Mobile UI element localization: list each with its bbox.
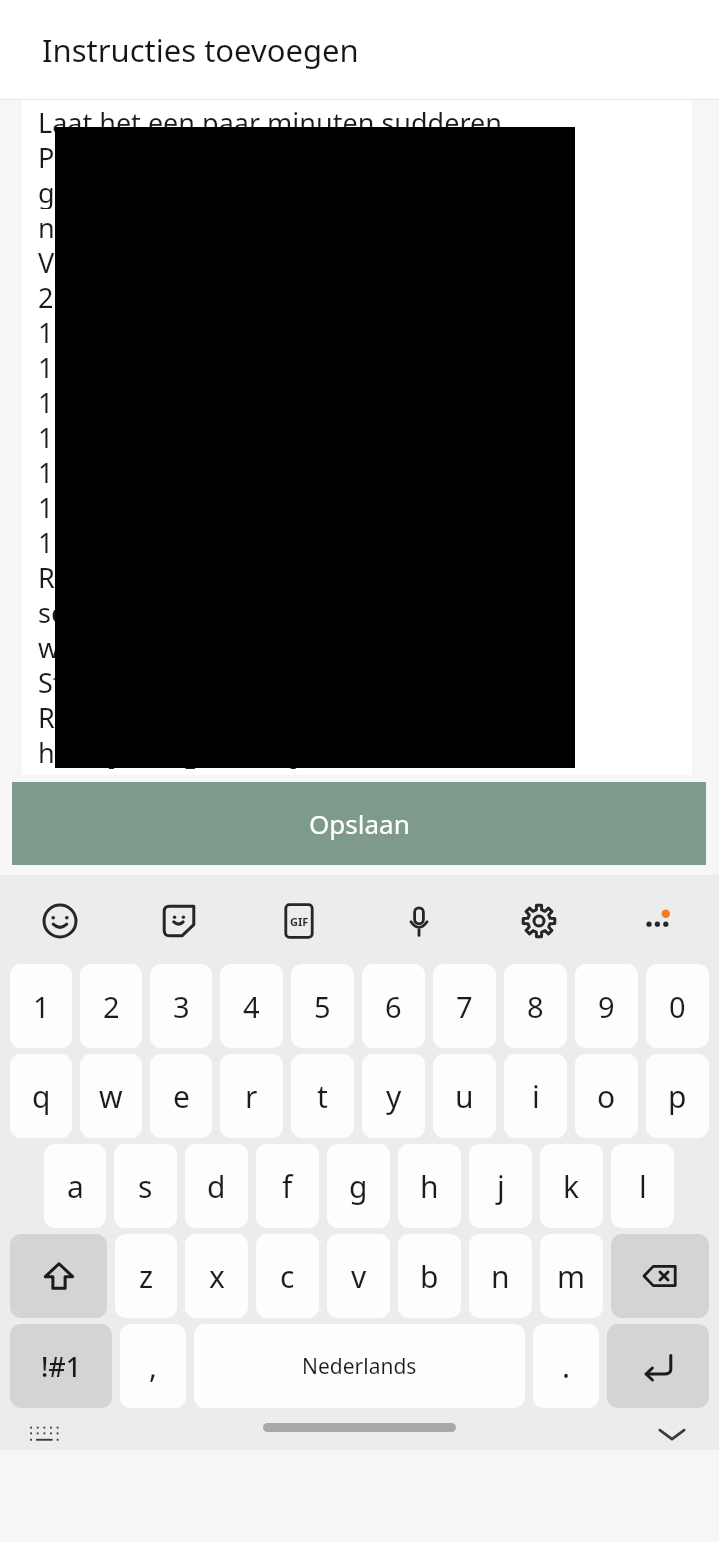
staticText: 1 bbox=[33, 987, 50, 1026]
button[interactable]: r bbox=[220, 1054, 283, 1138]
staticText: 2 bbox=[103, 987, 120, 1026]
staticText: j bbox=[497, 1166, 505, 1207]
button[interactable]: b bbox=[398, 1234, 461, 1318]
staticText: m bbox=[557, 1256, 586, 1297]
button[interactable]: k bbox=[540, 1144, 603, 1228]
staticText: wat geraspte kaas naar smaak voor bbox=[38, 629, 488, 664]
staticText: y bbox=[386, 1076, 402, 1117]
button[interactable]: t bbox=[291, 1054, 354, 1138]
button[interactable]: g bbox=[327, 1144, 390, 1228]
button[interactable]: e bbox=[150, 1054, 212, 1138]
button[interactable]: Backspace bbox=[611, 1234, 709, 1318]
button[interactable]: 3 bbox=[150, 964, 212, 1048]
staticText: f bbox=[282, 1166, 293, 1207]
staticText: h bbox=[420, 1166, 439, 1207]
button[interactable]: l bbox=[611, 1144, 674, 1228]
button[interactable]: Emoji bbox=[0, 882, 119, 960]
button[interactable]: Voice input bbox=[359, 882, 479, 960]
button[interactable]: d bbox=[185, 1144, 248, 1228]
staticText: heerlijke vegan curry is klaar bbox=[38, 734, 401, 769]
staticText: o bbox=[597, 1076, 616, 1117]
staticText: w bbox=[99, 1076, 123, 1117]
staticText: c bbox=[280, 1256, 295, 1297]
staticText: x bbox=[209, 1256, 225, 1297]
button[interactable]: More options bbox=[599, 882, 719, 960]
staticText: , bbox=[149, 1346, 158, 1387]
staticText: d bbox=[207, 1166, 226, 1207]
staticText: i bbox=[532, 1076, 540, 1117]
staticText: 1 bosje basilicum bbox=[38, 489, 257, 524]
button[interactable]: , bbox=[120, 1324, 186, 1408]
button[interactable]: x bbox=[185, 1234, 248, 1318]
button[interactable]: Nederlands bbox=[194, 1324, 525, 1408]
staticText: Roer nog een keer goed door. De bbox=[38, 699, 456, 734]
button[interactable]: h bbox=[398, 1144, 461, 1228]
button[interactable]: o bbox=[575, 1054, 638, 1138]
button[interactable]: GIF bbox=[239, 882, 359, 960]
staticText: noedels en roer alles door elkaar. bbox=[38, 209, 457, 244]
button[interactable]: z bbox=[115, 1234, 177, 1318]
button[interactable]: j bbox=[469, 1144, 532, 1228]
staticText: !#1 bbox=[41, 1348, 82, 1385]
button[interactable]: Instructies toevoegen bbox=[42, 29, 359, 71]
staticText: e bbox=[173, 1076, 190, 1117]
button[interactable]: n bbox=[469, 1234, 532, 1318]
staticText: a bbox=[67, 1166, 84, 1207]
button[interactable]: 6 bbox=[362, 964, 425, 1048]
button[interactable]: 0 bbox=[646, 964, 709, 1048]
button[interactable]: !#1 bbox=[10, 1324, 112, 1408]
button[interactable]: Opslaan bbox=[12, 782, 706, 865]
staticText: 1 pak noedels bbox=[38, 524, 214, 559]
button[interactable]: 4 bbox=[220, 964, 283, 1048]
button[interactable]: . bbox=[533, 1324, 599, 1408]
staticText: garde zodat het goed mengt met de bbox=[38, 174, 497, 209]
button[interactable]: Stickers bbox=[119, 882, 239, 960]
staticText: 5 bbox=[314, 987, 331, 1026]
staticText: Opslaan bbox=[309, 806, 410, 841]
button[interactable]: w bbox=[80, 1054, 142, 1138]
button[interactable]: p bbox=[646, 1054, 709, 1138]
button[interactable]: 8 bbox=[504, 964, 567, 1048]
button[interactable]: 9 bbox=[575, 964, 638, 1048]
staticText: Plet de macaroni met een stamper of bbox=[38, 139, 509, 174]
staticText: Roer de saus door de noedels heen bbox=[38, 559, 486, 594]
staticText: 2 eetlepels olijfolie bbox=[38, 279, 274, 314]
button[interactable]: q bbox=[10, 1054, 72, 1138]
button[interactable]: 1 bbox=[10, 964, 72, 1048]
staticText: Verdeel over de kommen en serveer. bbox=[38, 244, 499, 279]
button[interactable]: y bbox=[362, 1054, 425, 1138]
staticText: k bbox=[563, 1166, 580, 1207]
button[interactable]: 7 bbox=[433, 964, 496, 1048]
staticText: 8 bbox=[527, 987, 544, 1026]
staticText: l bbox=[639, 1166, 647, 1207]
staticText: 3 bbox=[173, 987, 190, 1026]
button[interactable]: i bbox=[504, 1054, 567, 1138]
staticText: b bbox=[420, 1256, 439, 1297]
button[interactable]: a bbox=[44, 1144, 106, 1228]
button[interactable]: f bbox=[256, 1144, 319, 1228]
button[interactable]: m bbox=[540, 1234, 603, 1318]
button[interactable]: c bbox=[256, 1234, 319, 1318]
button[interactable]: Settings bbox=[479, 882, 599, 960]
staticText: serveer met verse kruiden erbij en bbox=[38, 594, 473, 629]
staticText: 6 bbox=[385, 987, 402, 1026]
staticText: Nederlands bbox=[302, 1352, 417, 1381]
button[interactable]: Enter bbox=[607, 1324, 709, 1408]
button[interactable]: 2 bbox=[80, 964, 142, 1048]
button[interactable]: Shift bbox=[10, 1234, 107, 1318]
staticText: n bbox=[491, 1256, 510, 1297]
staticText: Laat het een paar minuten sudderen, bbox=[38, 104, 510, 139]
button[interactable]: u bbox=[433, 1054, 496, 1138]
staticText: 1 snufje peper bbox=[38, 454, 221, 489]
staticText: s bbox=[138, 1166, 153, 1207]
staticText: 7 bbox=[456, 987, 473, 1026]
staticText: 1 teen knoflook bbox=[38, 349, 236, 384]
staticText: r bbox=[245, 1076, 258, 1117]
staticText: g bbox=[349, 1166, 368, 1207]
button[interactable]: Hide keyboard bbox=[641, 1418, 703, 1450]
button[interactable]: Switch keyboard bbox=[14, 1418, 74, 1450]
button[interactable]: 5 bbox=[291, 964, 354, 1048]
button[interactable]: v bbox=[327, 1234, 390, 1318]
staticText: Strooi er wat peper over en dan een bbox=[38, 664, 493, 699]
button[interactable]: s bbox=[114, 1144, 177, 1228]
